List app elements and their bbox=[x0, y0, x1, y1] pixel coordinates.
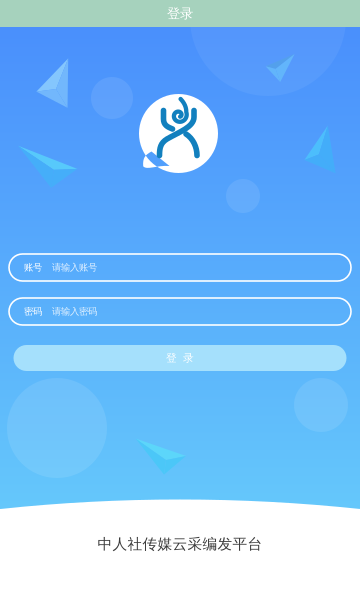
staticText: 登录 bbox=[167, 5, 193, 22]
button[interactable]: 登 录 bbox=[13, 345, 346, 371]
button[interactable]: 账号 bbox=[9, 254, 351, 281]
staticText: 密码 bbox=[24, 306, 42, 317]
staticText: 登 录 bbox=[166, 351, 194, 364]
staticText: 请输入密码 bbox=[52, 306, 97, 317]
staticText: 请输入账号 bbox=[52, 262, 97, 273]
staticText: 中人社传媒云采编发平台 bbox=[97, 535, 262, 553]
staticText: 账号 bbox=[24, 262, 42, 273]
button[interactable]: 密码 bbox=[9, 298, 351, 325]
